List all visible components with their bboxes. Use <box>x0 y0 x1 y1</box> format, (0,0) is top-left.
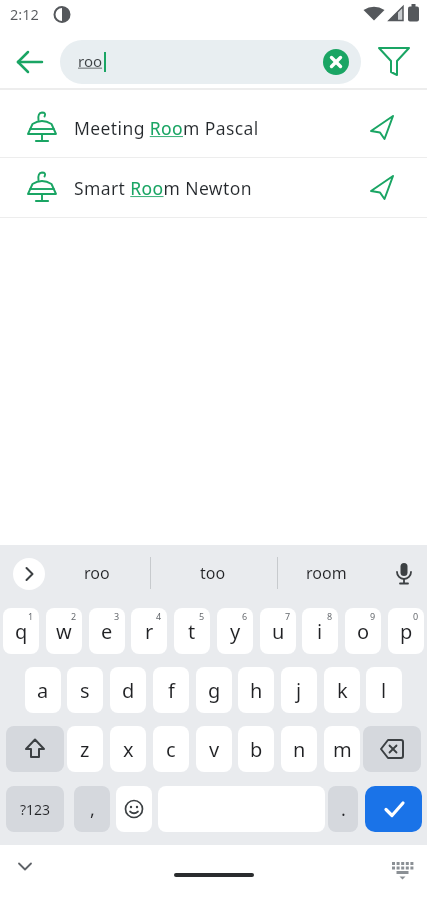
button[interactable]: . <box>328 786 358 832</box>
button[interactable]: roo <box>57 550 137 596</box>
staticText: ?123 <box>20 800 51 819</box>
button[interactable] <box>11 852 39 880</box>
button[interactable]: d <box>110 667 146 713</box>
button[interactable]: roo <box>60 40 361 84</box>
staticText: 7 <box>285 610 291 622</box>
button[interactable] <box>388 558 420 590</box>
staticText: , <box>90 797 95 822</box>
button[interactable]: ?123 <box>6 786 64 832</box>
button[interactable]: f <box>153 667 189 713</box>
button[interactable]: Smart Room Newton <box>0 158 427 217</box>
button[interactable] <box>13 558 45 590</box>
staticText: j <box>296 677 302 704</box>
button[interactable]: too <box>173 550 253 596</box>
staticText: c <box>166 736 176 763</box>
button[interactable]: s <box>67 667 103 713</box>
button[interactable]: i <box>302 608 338 654</box>
staticText: y <box>230 618 241 645</box>
button[interactable]: z <box>67 726 103 772</box>
button[interactable]: w <box>46 608 82 654</box>
button[interactable]: l <box>366 667 402 713</box>
staticText: s <box>80 677 90 704</box>
button[interactable]: r <box>131 608 167 654</box>
button[interactable] <box>323 49 349 75</box>
button[interactable]: q <box>3 608 39 654</box>
button[interactable]: g <box>196 667 232 713</box>
staticText: t <box>188 618 196 645</box>
staticText: o <box>357 618 370 645</box>
staticText: r <box>145 618 154 645</box>
button[interactable] <box>376 44 412 80</box>
staticText: 2:12 <box>10 4 39 24</box>
staticText: e <box>101 618 113 645</box>
staticText: i <box>317 618 323 645</box>
staticText: a <box>37 677 49 704</box>
button[interactable]: v <box>196 726 232 772</box>
staticText: x <box>123 736 134 763</box>
button[interactable]: n <box>281 726 317 772</box>
button[interactable]: y <box>217 608 253 654</box>
button[interactable] <box>10 42 50 82</box>
staticText: f <box>168 677 175 704</box>
staticText: w <box>56 618 72 645</box>
staticText: 8 <box>327 610 333 622</box>
button[interactable]: h <box>238 667 274 713</box>
button[interactable]: k <box>324 667 360 713</box>
button[interactable]: m <box>324 726 360 772</box>
button[interactable]: x <box>110 726 146 772</box>
button[interactable] <box>116 786 152 832</box>
staticText: n <box>293 736 306 763</box>
staticText: q <box>15 618 28 645</box>
staticText: k <box>337 677 348 704</box>
staticText: 4 <box>156 610 162 622</box>
button[interactable]: e <box>89 608 125 654</box>
staticText: 0 <box>413 610 419 622</box>
button[interactable]: t <box>174 608 210 654</box>
button[interactable] <box>390 858 416 882</box>
staticText: too <box>200 562 226 584</box>
staticText: 2 <box>71 610 77 622</box>
staticText: 9 <box>370 610 376 622</box>
staticText: h <box>250 677 263 704</box>
staticText: v <box>209 736 220 763</box>
button[interactable]: , <box>74 786 110 832</box>
button[interactable] <box>6 726 64 772</box>
button[interactable]: j <box>281 667 317 713</box>
staticText: m <box>333 736 352 763</box>
staticText: p <box>400 618 413 645</box>
button[interactable] <box>365 786 422 832</box>
staticText: roo <box>84 562 110 584</box>
staticText: room <box>306 562 347 584</box>
staticText: z <box>80 736 90 763</box>
staticText: 3 <box>114 610 120 622</box>
button[interactable]: o <box>345 608 381 654</box>
button[interactable]: c <box>153 726 189 772</box>
staticText: roo <box>78 51 103 71</box>
button[interactable]: Meeting Room Pascal <box>0 90 427 157</box>
staticText: d <box>122 677 135 704</box>
staticText: Smart Room Newton <box>74 176 252 200</box>
staticText: . <box>341 797 346 822</box>
button[interactable]: room <box>286 550 366 596</box>
staticText: g <box>208 677 221 704</box>
staticText: b <box>250 736 263 763</box>
staticText: Meeting Room Pascal <box>74 116 259 140</box>
button[interactable]: b <box>238 726 274 772</box>
button[interactable]: a <box>25 667 61 713</box>
staticText: l <box>381 677 387 704</box>
button[interactable] <box>363 726 421 772</box>
button[interactable]: u <box>260 608 296 654</box>
staticText: 1 <box>28 610 34 622</box>
button[interactable]: p <box>388 608 424 654</box>
staticText: 5 <box>199 610 205 622</box>
staticText: u <box>272 618 285 645</box>
staticText: 6 <box>242 610 248 622</box>
